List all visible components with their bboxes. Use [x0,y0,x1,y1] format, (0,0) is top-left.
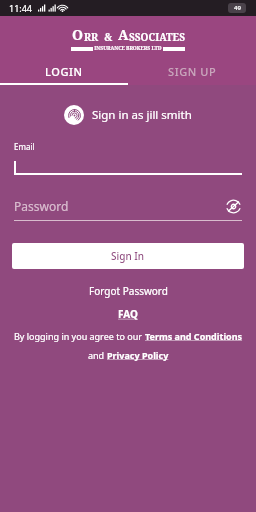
button[interactable]: Sign In [12,243,244,269]
staticText: A [118,25,129,44]
staticText: O [72,25,84,44]
staticText: SIGN UP [168,64,217,79]
staticText: Sign In [111,249,145,263]
staticText: & [99,30,118,44]
button[interactable]: FAQ [110,305,146,323]
staticText: FAQ [118,307,138,321]
button[interactable]: Show password [224,197,242,215]
staticText: Email [14,141,35,152]
staticText: Password [14,198,224,214]
button[interactable]: Password [14,197,242,221]
staticText: 49 [234,4,241,12]
staticText: INSURANCE BROKERS LTD [93,45,163,52]
button[interactable]: SIGN UP [128,60,256,83]
button[interactable]: LOGIN [0,60,128,83]
staticText: 11:44 [9,2,33,14]
staticText: By logging in you agree to our [14,330,145,342]
button[interactable]: Forgot Password [81,281,176,301]
staticText: and [88,349,107,361]
button[interactable]: Sign in as jill smith [58,103,198,127]
staticText: SSOCIATES [129,30,185,44]
button[interactable]: Terms and Conditions [145,330,243,342]
staticText: Sign in as jill smith [92,107,192,123]
staticText: Privacy Policy [107,349,169,361]
button[interactable]: Privacy Policy [107,349,169,361]
staticText: Forgot Password [89,284,168,298]
button[interactable]: Email [14,141,242,175]
staticText: Terms and Conditions [145,330,243,342]
staticText: LOGIN [45,64,83,79]
staticText: RR [84,30,99,44]
